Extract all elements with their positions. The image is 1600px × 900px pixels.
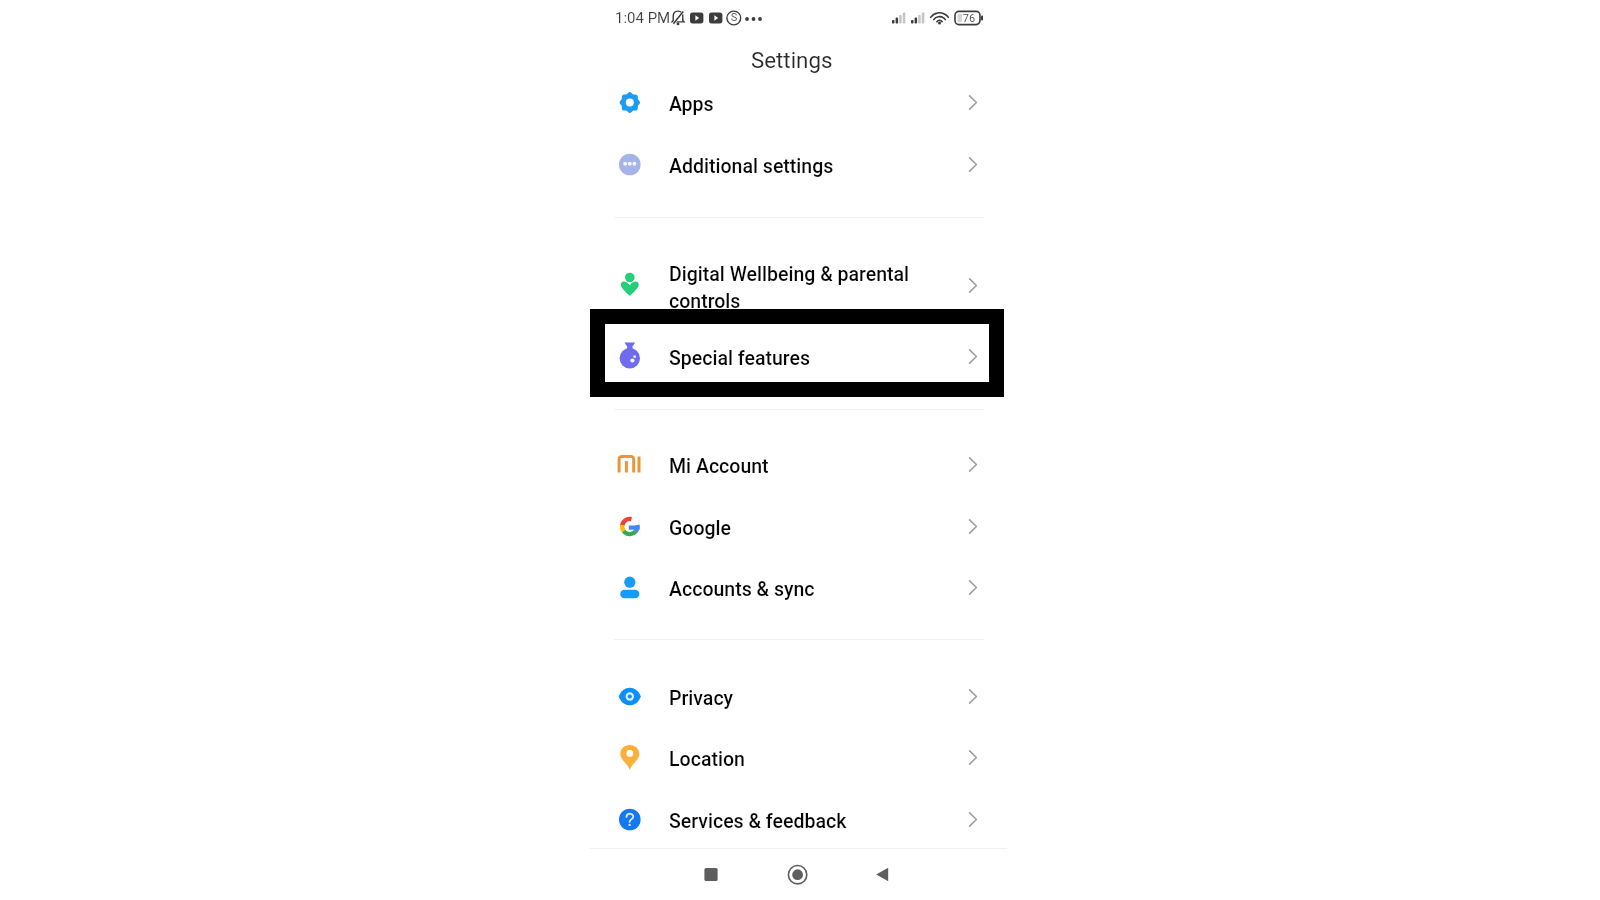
staticText: Settings (751, 47, 833, 73)
button[interactable]: Privacy (590, 666, 1004, 727)
staticText: Accounts & sync (669, 578, 815, 601)
button[interactable]: Additional settings (590, 134, 1004, 195)
staticText: Apps (669, 93, 714, 116)
staticText: S (729, 11, 739, 24)
button[interactable]: Digital Wellbeing & parental controls (590, 255, 1004, 316)
button[interactable]: Location (590, 727, 1004, 788)
button[interactable]: Home (772, 850, 822, 899)
button[interactable]: Back (857, 850, 907, 899)
button[interactable]: Google (590, 496, 1004, 557)
button[interactable]: Mi Account (590, 434, 1004, 495)
staticText: Services & feedback (669, 810, 847, 833)
staticText: Location (669, 748, 745, 771)
button[interactable]: Settings (585, 40, 999, 80)
staticText: Digital Wellbeing & parental controls (669, 263, 910, 312)
staticText: Privacy (669, 687, 734, 710)
button[interactable]: Apps (590, 72, 1004, 133)
staticText: 1:04 PM (615, 9, 671, 27)
staticText: Special features (669, 347, 811, 370)
staticText: Additional settings (669, 155, 834, 178)
staticText: Mi Account (669, 455, 769, 478)
button[interactable]: Recent apps (686, 850, 736, 899)
button[interactable]: Accounts & sync (590, 557, 1004, 618)
button[interactable]: Services & feedback (590, 789, 1004, 850)
staticText: 76 (961, 12, 977, 25)
button[interactable]: Special features (590, 326, 1004, 387)
staticText: Google (669, 517, 731, 540)
